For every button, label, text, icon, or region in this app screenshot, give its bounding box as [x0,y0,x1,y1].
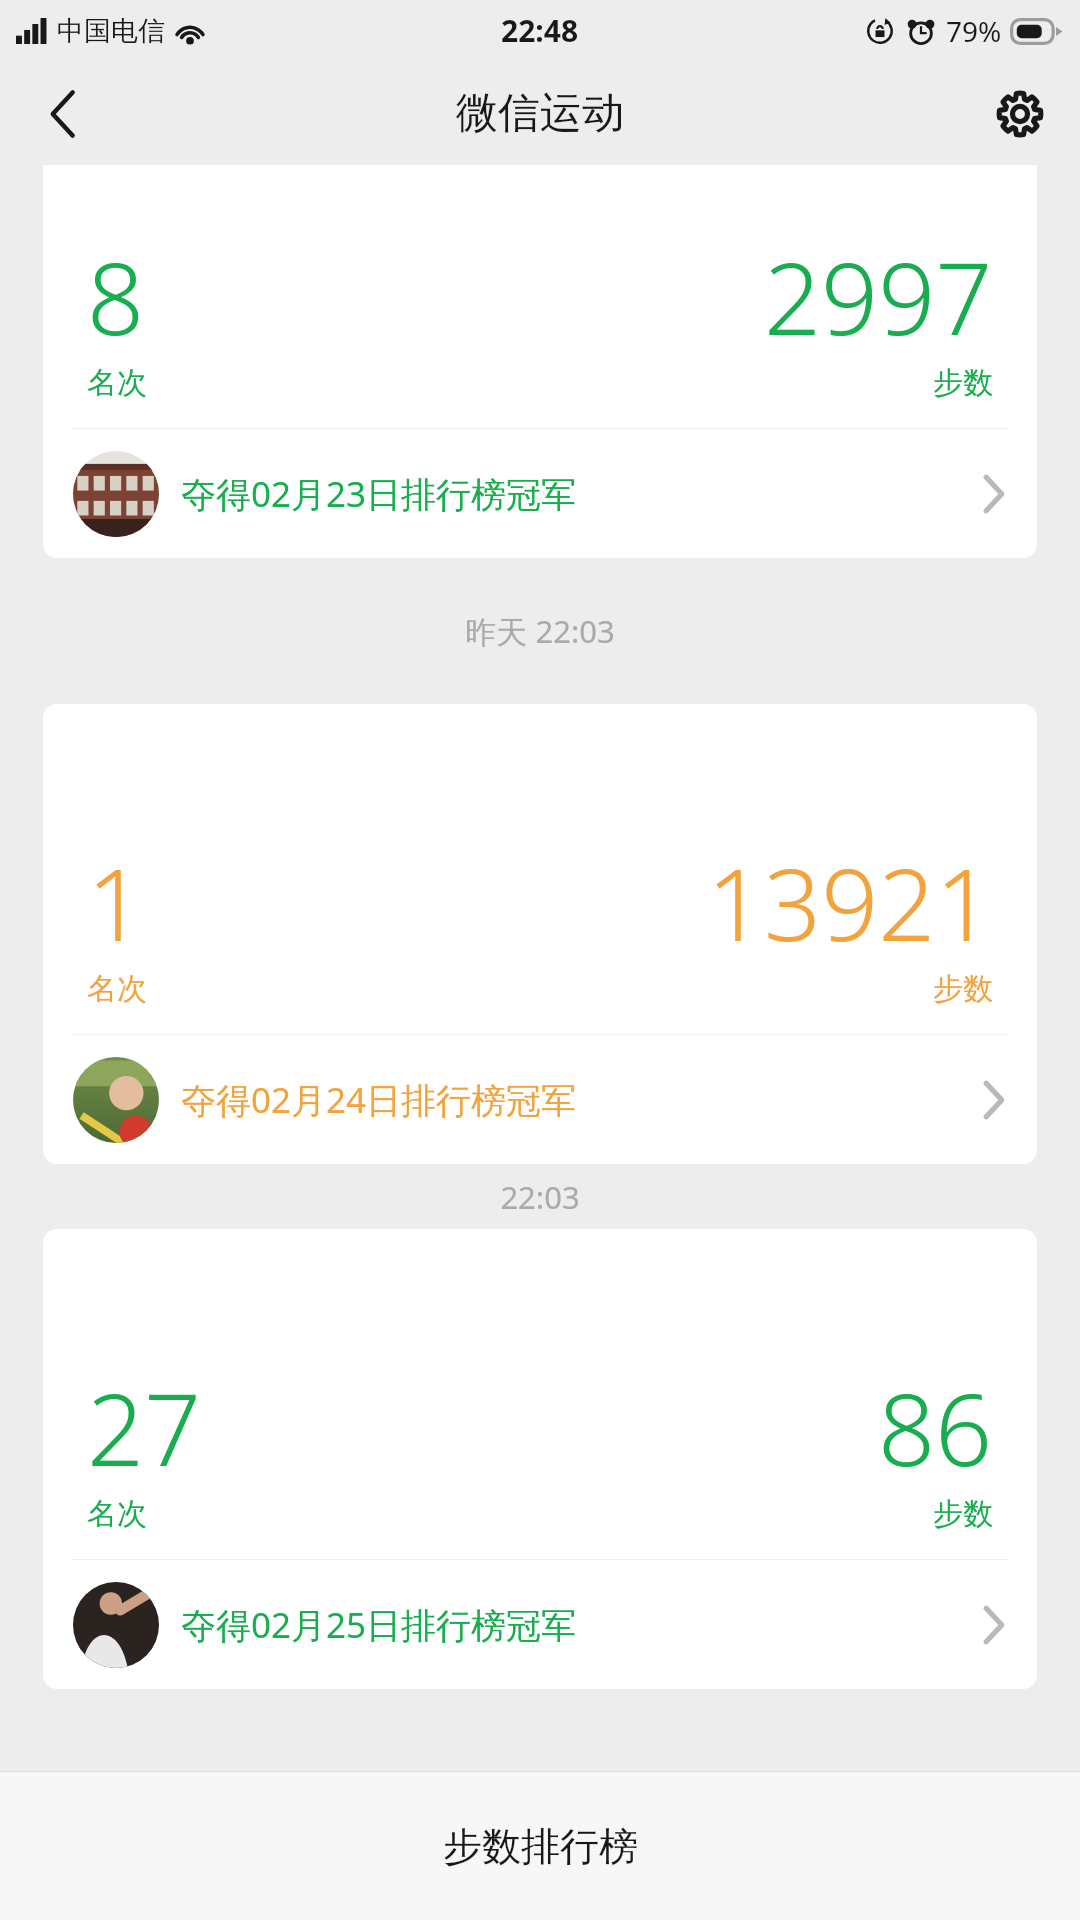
button[interactable]: Back [24,75,102,153]
staticText: 名次 [87,364,147,402]
button[interactable]: 夺得02月23日排行榜冠军 [43,429,1037,558]
button[interactable]: 27 [43,1229,1037,1689]
staticText: 步数 [933,1495,993,1533]
button[interactable]: 夺得02月25日排行榜冠军 [43,1560,1037,1689]
staticText: 步数排行榜 [443,1822,638,1871]
button[interactable]: 1 [43,704,1037,1164]
staticText: 步数 [933,970,993,1008]
staticText: 8 [87,228,145,364]
staticText: 1 [87,834,145,970]
button[interactable]: 夺得02月24日排行榜冠军 [43,1035,1037,1164]
staticText: 22:03 [500,1176,580,1218]
staticText: 27 [87,1359,202,1495]
button[interactable]: Settings [980,74,1060,154]
staticText: 夺得02月23日排行榜冠军 [181,470,577,518]
staticText: 中国电信 [57,14,165,48]
staticText: 夺得02月24日排行榜冠军 [181,1076,577,1124]
staticText: 名次 [87,970,147,1008]
staticText: 微信运动 [456,87,624,140]
button[interactable]: 8 [43,165,1037,558]
staticText: 79% [946,12,1002,50]
staticText: 13921 [707,834,993,970]
staticText: 86 [878,1359,993,1495]
staticText: 22:48 [501,10,579,51]
staticText: 步数 [933,364,993,402]
staticText: 夺得02月25日排行榜冠军 [181,1601,577,1649]
staticText: 名次 [87,1495,147,1533]
staticText: 2997 [764,228,993,364]
staticText: 昨天 22:03 [465,610,615,652]
button[interactable]: 步数排行榜 [0,1772,1080,1920]
